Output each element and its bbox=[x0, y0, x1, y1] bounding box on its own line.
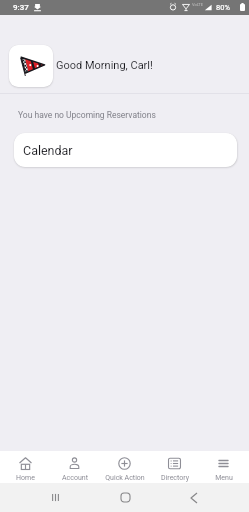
button[interactable]: Home bbox=[1, 451, 50, 483]
staticText: Good Morning, Carl! bbox=[56, 59, 153, 72]
staticText: You have no Upcoming Reservations bbox=[18, 110, 156, 120]
button[interactable]: Calendar bbox=[14, 133, 237, 167]
staticText: Directory bbox=[161, 474, 189, 482]
staticText: Menu bbox=[215, 474, 233, 482]
button[interactable]: Directory bbox=[150, 451, 199, 483]
staticText: VoLTE bbox=[192, 2, 204, 7]
button[interactable]: Menu bbox=[199, 451, 248, 483]
staticText: Home bbox=[16, 474, 35, 482]
button[interactable]: Recent apps bbox=[40, 483, 70, 512]
button[interactable]: Quick Action bbox=[100, 451, 149, 483]
button[interactable]: Back bbox=[179, 483, 209, 512]
button[interactable]: Home bbox=[110, 483, 140, 512]
staticText: 80% bbox=[216, 3, 230, 12]
button[interactable]: Account bbox=[50, 451, 99, 483]
staticText: Calendar bbox=[23, 143, 73, 158]
staticText: Account bbox=[62, 474, 88, 482]
staticText: 9:37 bbox=[13, 3, 29, 12]
staticText: Quick Action bbox=[105, 474, 145, 482]
